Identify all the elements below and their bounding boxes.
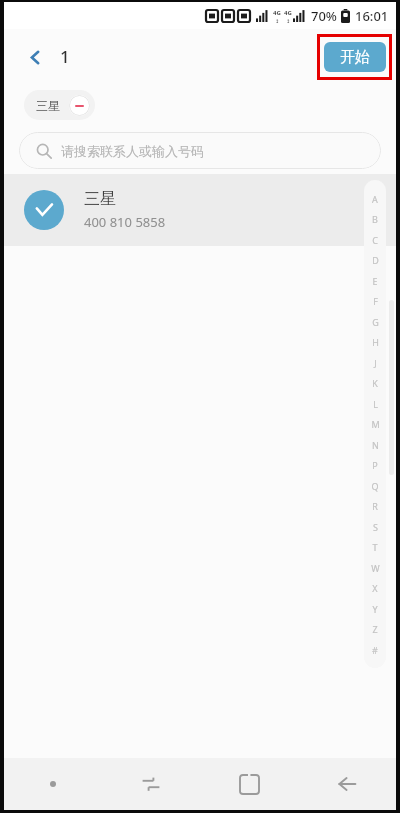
- staticText: F: [373, 295, 378, 307]
- staticText: K: [372, 377, 378, 389]
- staticText: T: [372, 541, 378, 553]
- staticText: 请搜索联系人或输入号码: [61, 143, 204, 159]
- staticText: Z: [372, 623, 378, 635]
- staticText: S: [373, 521, 378, 533]
- staticText: Q: [371, 480, 379, 492]
- staticText: M: [371, 418, 380, 430]
- staticText: 开始: [340, 48, 370, 67]
- staticText: 1: [60, 45, 70, 68]
- staticText: H: [372, 336, 379, 348]
- staticText: ↕: [286, 18, 291, 24]
- staticText: 4G: [284, 9, 292, 17]
- staticText: 4G: [273, 9, 281, 17]
- staticText: Y: [372, 603, 378, 615]
- button[interactable]: 开始: [324, 42, 386, 72]
- staticText: G: [372, 316, 379, 328]
- staticText: E: [372, 275, 378, 287]
- staticText: ↕: [275, 18, 280, 24]
- button[interactable]: 三星: [4, 174, 396, 246]
- staticText: 70%: [311, 7, 337, 25]
- staticText: W: [371, 562, 380, 574]
- staticText: L: [373, 398, 378, 410]
- staticText: #: [372, 644, 378, 656]
- button[interactable]: Back: [18, 40, 52, 74]
- button[interactable]: 三星: [24, 90, 95, 120]
- staticText: A: [372, 193, 378, 205]
- button[interactable]: Recents: [102, 758, 200, 810]
- staticText: N: [372, 439, 379, 451]
- button[interactable]: A: [364, 180, 386, 668]
- staticText: 三星: [84, 189, 116, 209]
- staticText: R: [372, 500, 378, 512]
- staticText: P: [372, 459, 378, 471]
- button[interactable]: Remove: [69, 95, 90, 116]
- button[interactable]: 请搜索联系人或输入号码: [19, 132, 381, 169]
- button[interactable]: Home: [200, 758, 298, 810]
- button[interactable]: Indicator: [4, 758, 102, 810]
- staticText: 三星: [36, 98, 60, 113]
- staticText: B: [372, 213, 378, 225]
- staticText: X: [372, 582, 378, 594]
- staticText: C: [372, 234, 378, 246]
- staticText: D: [372, 254, 379, 266]
- staticText: 16:01: [355, 7, 389, 25]
- staticText: J: [374, 357, 377, 369]
- button[interactable]: Back: [298, 758, 396, 810]
- staticText: 400 810 5858: [84, 213, 166, 231]
